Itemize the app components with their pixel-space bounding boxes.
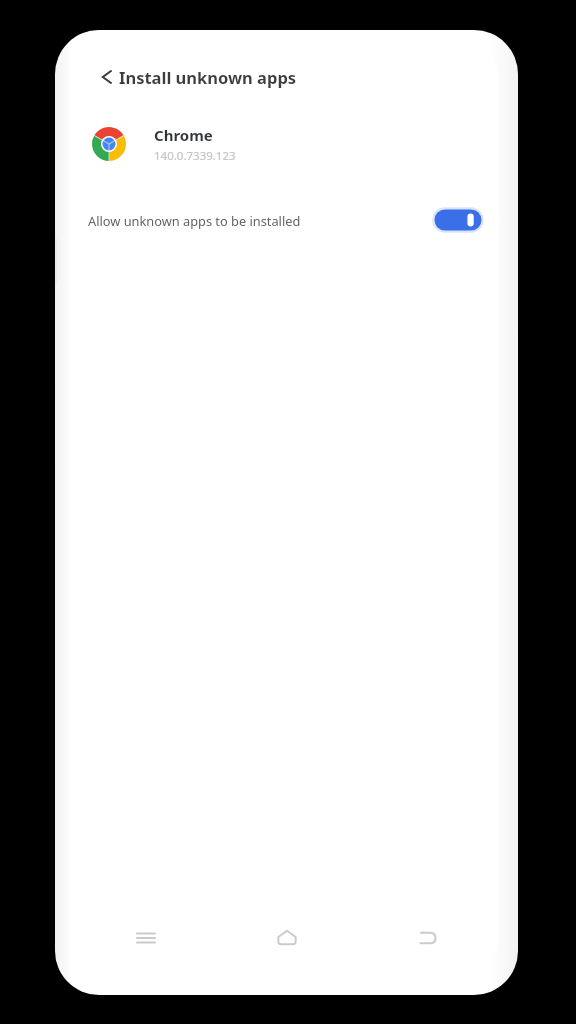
- button[interactable]: Back: [85, 57, 125, 97]
- button[interactable]: Allow unknown apps to be installed: [75, 198, 498, 242]
- staticText: Allow unknown apps to be installed: [88, 212, 301, 229]
- button[interactable]: Recent apps: [75, 914, 216, 962]
- button[interactable]: Home: [216, 914, 357, 962]
- button[interactable]: Chrome: [75, 108, 498, 180]
- staticText: 140.0.7339.123: [154, 148, 236, 164]
- staticText: Install unknown apps: [119, 66, 297, 88]
- button[interactable]: Back: [357, 914, 498, 962]
- button[interactable]: Allow unknown apps toggle, on: [432, 206, 484, 234]
- staticText: Chrome: [154, 125, 213, 145]
